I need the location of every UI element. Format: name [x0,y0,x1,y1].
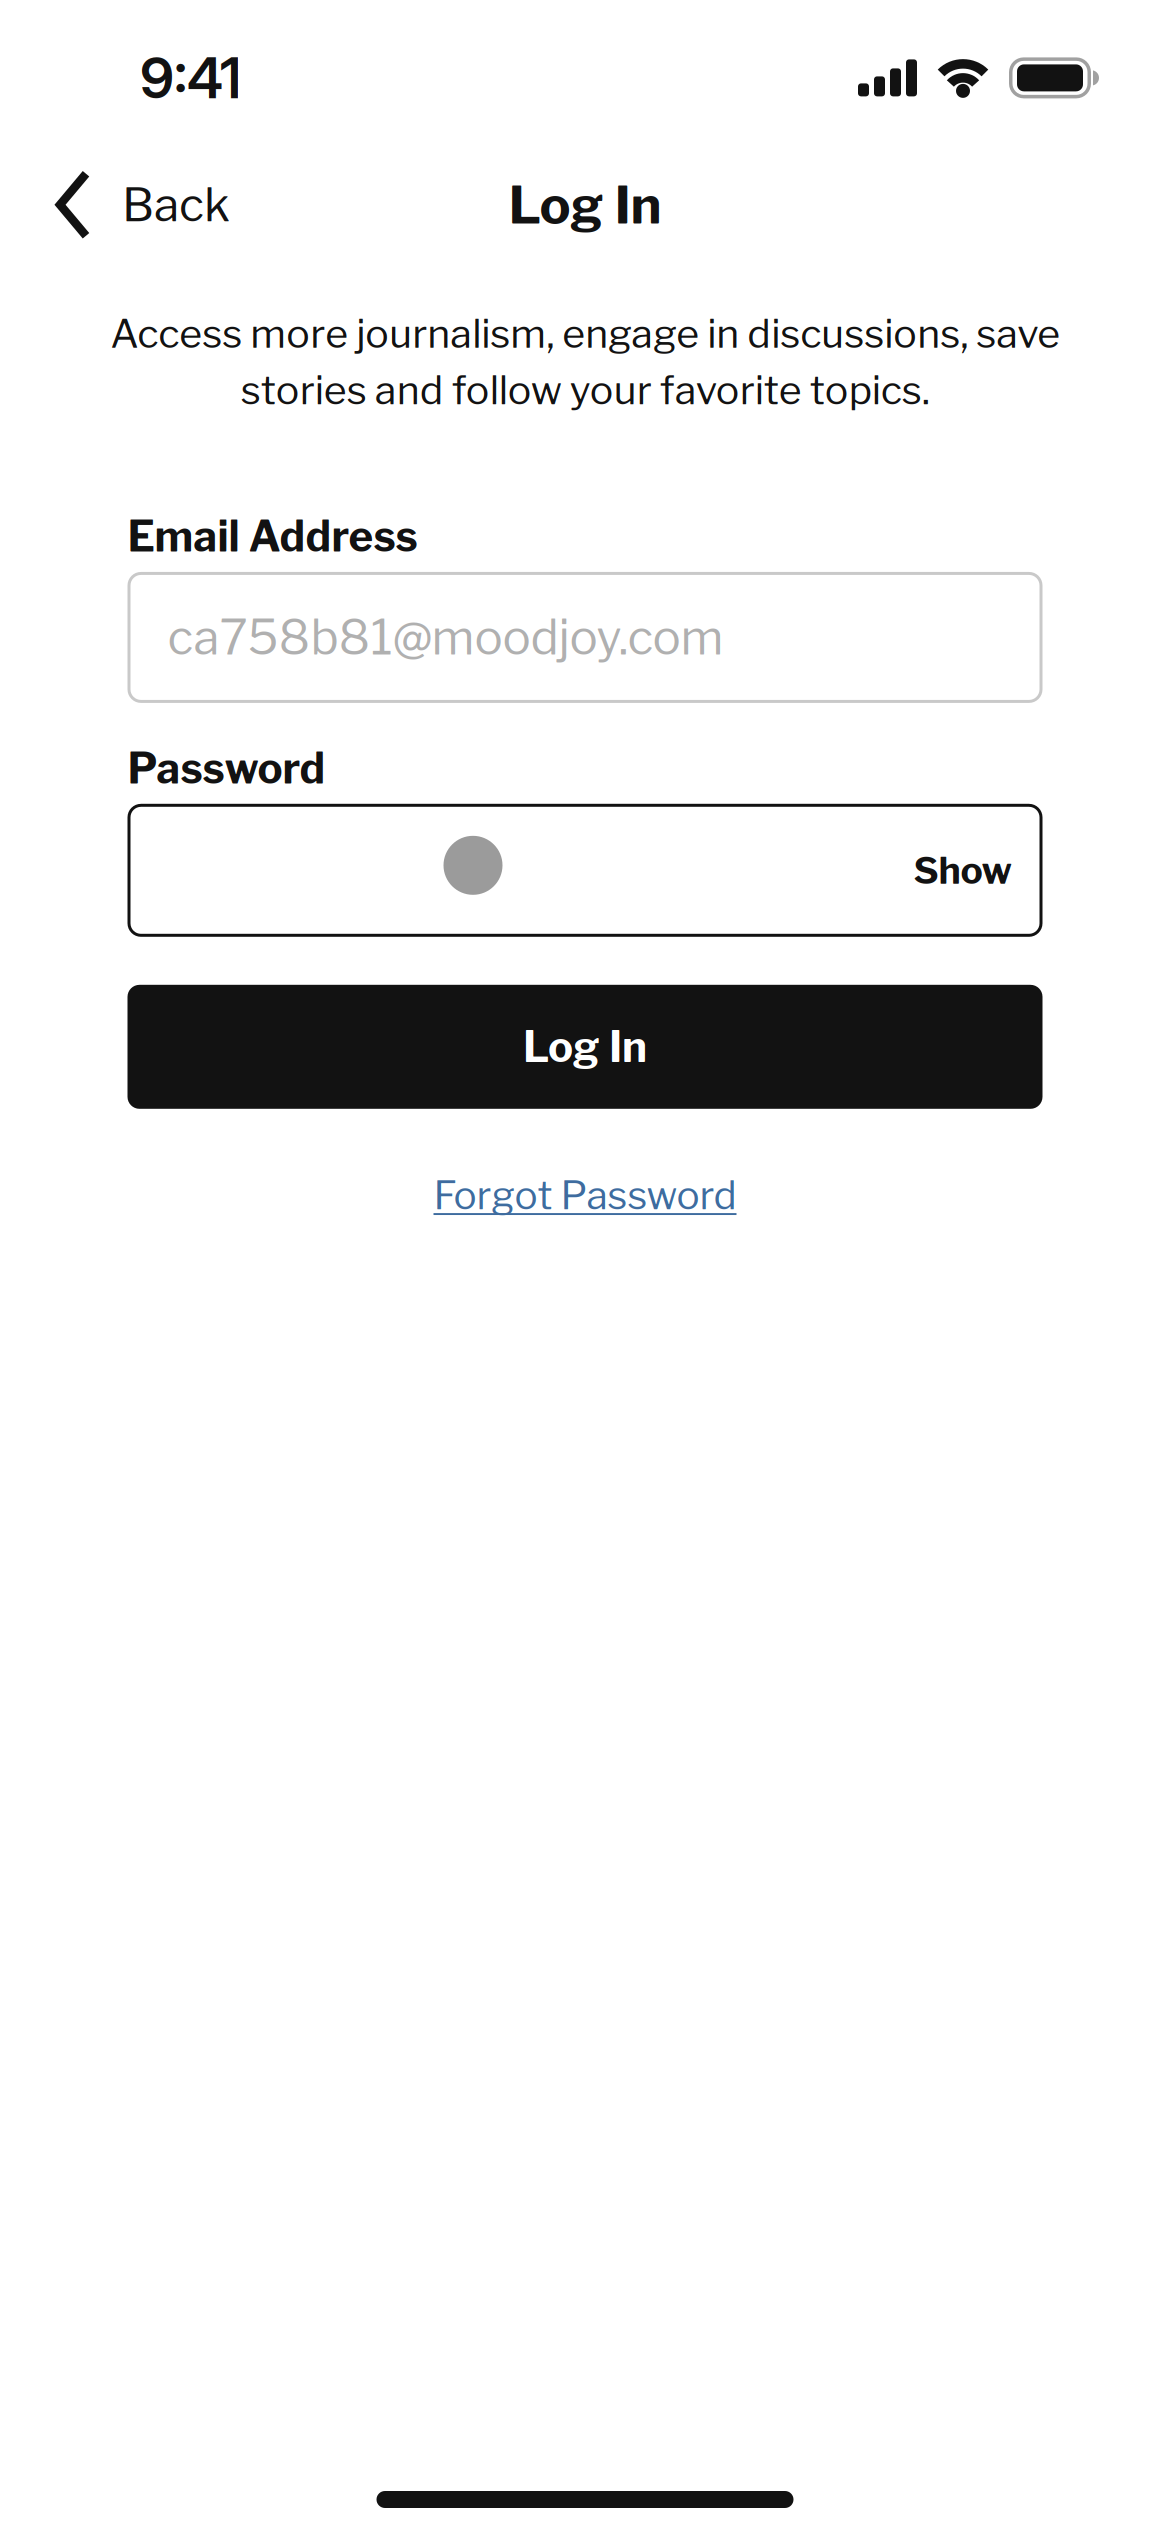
staticText: Back [122,177,230,233]
button[interactable]: Email Address [127,572,1042,703]
staticText: Access more journalism, engage in discus… [110,310,1060,414]
staticText: Forgot Password [433,1172,736,1219]
button[interactable]: Log In [127,985,1042,1109]
staticText: ca758b81@moodjoy.com [167,609,723,666]
button[interactable]: Password [127,804,1042,937]
button[interactable]: Back [55,170,230,240]
staticText: Show [913,848,1012,893]
staticText: Log In [523,1021,647,1072]
staticText: Email Address [127,511,417,562]
staticText: 9:41 [140,44,241,112]
button[interactable]: Forgot Password [433,1172,736,1219]
staticText: Password [127,743,325,794]
staticText: Log In [508,173,661,236]
button[interactable]: Show [913,848,1012,893]
